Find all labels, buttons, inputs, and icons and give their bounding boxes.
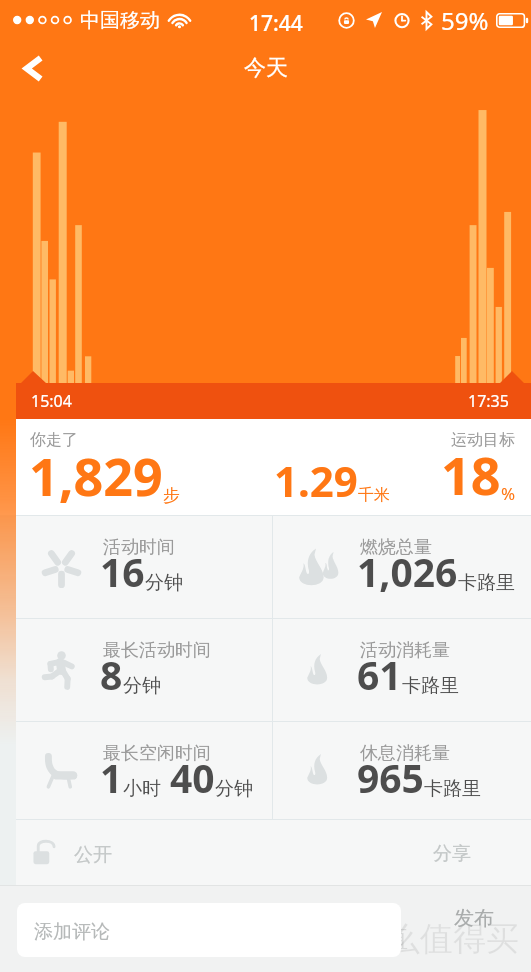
staticText: 15:04 bbox=[31, 390, 72, 412]
staticText: 千米 bbox=[358, 485, 390, 505]
staticText: % bbox=[501, 482, 516, 505]
staticText: 40 bbox=[170, 751, 215, 804]
button[interactable]: Back bbox=[8, 43, 58, 93]
button[interactable]: 发布 bbox=[440, 896, 508, 941]
button[interactable]: 添加评论 bbox=[17, 903, 401, 957]
staticText: 今天 bbox=[244, 54, 288, 82]
staticText: 17:44 bbox=[249, 9, 303, 38]
staticText: 最长空闲时间 bbox=[103, 742, 211, 765]
button[interactable]: 活动时间 bbox=[16, 515, 272, 618]
staticText: 什么值得买 bbox=[354, 918, 519, 960]
staticText: 中国移动 bbox=[80, 8, 160, 33]
staticText: 1 bbox=[100, 751, 123, 804]
staticText: 61 bbox=[357, 648, 402, 701]
staticText: 18 bbox=[441, 439, 501, 510]
staticText: 活动消耗量 bbox=[360, 639, 450, 662]
staticText: 1.29 bbox=[274, 452, 358, 509]
staticText: 公开 bbox=[74, 843, 112, 867]
staticText: 17:35 bbox=[468, 390, 509, 412]
staticText: 运动目标 bbox=[451, 430, 515, 450]
staticText: 分钟 bbox=[215, 777, 253, 801]
button[interactable]: 公开 bbox=[32, 831, 126, 874]
button[interactable]: 分享 bbox=[419, 829, 485, 875]
staticText: 8 bbox=[100, 648, 123, 701]
staticText: 卡路里 bbox=[424, 777, 481, 801]
staticText: 小时 bbox=[123, 777, 161, 801]
button[interactable]: 最长空闲时间 bbox=[16, 721, 272, 819]
staticText: 发布 bbox=[454, 906, 494, 931]
staticText: 最长活动时间 bbox=[103, 639, 211, 662]
staticText: 1,829 bbox=[29, 440, 163, 511]
button[interactable]: 燃烧总量 bbox=[273, 515, 531, 618]
button[interactable]: 活动消耗量 bbox=[273, 618, 531, 721]
staticText: 步 bbox=[163, 485, 180, 506]
staticText: 分钟 bbox=[123, 674, 161, 698]
staticText: 休息消耗量 bbox=[360, 742, 450, 765]
staticText: 卡路里 bbox=[402, 674, 459, 698]
button[interactable]: 休息消耗量 bbox=[273, 721, 531, 819]
staticText: 16 bbox=[100, 545, 145, 598]
staticText: 965 bbox=[357, 751, 424, 804]
staticText: 值 bbox=[382, 922, 408, 955]
staticText: 分享 bbox=[433, 842, 471, 866]
staticText: 活动时间 bbox=[103, 536, 175, 559]
staticText: 燃烧总量 bbox=[360, 536, 432, 559]
staticText: 1,026 bbox=[357, 545, 458, 598]
staticText: 你走了 bbox=[30, 430, 78, 450]
staticText: 添加评论 bbox=[34, 920, 110, 944]
staticText: 59% bbox=[441, 4, 489, 37]
staticText: 卡路里 bbox=[458, 571, 515, 595]
staticText: 分钟 bbox=[145, 571, 183, 595]
button[interactable]: 最长活动时间 bbox=[16, 618, 272, 721]
